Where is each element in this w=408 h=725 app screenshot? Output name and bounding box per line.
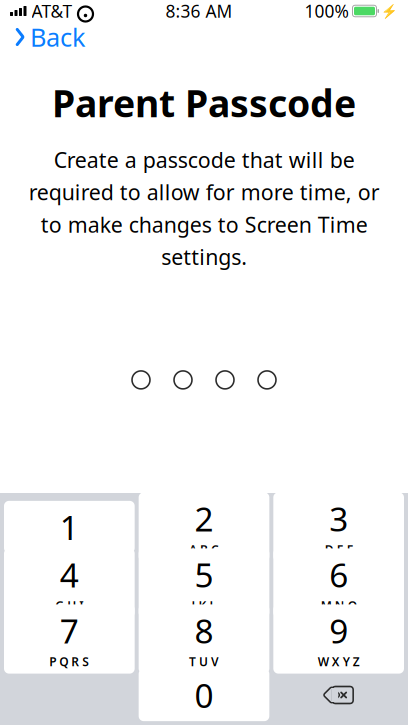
staticText: M N O [321,598,357,614]
staticText: P Q R S [49,654,89,670]
button[interactable]: 8 [139,613,269,665]
staticText: 1 [60,505,79,549]
staticText: W X Y Z [318,654,360,670]
staticText: 8:36 AM [165,0,232,22]
button[interactable]: Back [6,16,94,58]
button[interactable]: 4 [4,557,135,609]
staticText: 3 [329,496,348,541]
button[interactable]: 5 [139,557,269,609]
staticText: Parent Passcode [52,78,356,128]
button[interactable]: 1 [4,501,135,553]
staticText: 6 [329,552,348,597]
staticText: A B C [189,542,219,558]
staticText: 0 [194,673,213,717]
staticText: 7 [60,608,79,653]
button[interactable]: Delete [273,669,404,721]
button[interactable]: 0 [139,669,269,721]
staticText: 5 [194,552,213,597]
staticText: AT&T [31,0,72,22]
button[interactable]: 6 [273,557,404,609]
staticText: T U V [189,654,219,670]
staticText: J K L [191,598,216,614]
staticText: 4 [60,552,79,597]
button[interactable]: 3 [273,501,404,553]
staticText: ⚡ [381,3,398,19]
staticText: Create a passcode that will be required … [28,146,379,271]
staticText: G H I [55,598,83,614]
staticText: 2 [194,496,213,541]
button[interactable]: 2 [139,501,269,553]
staticText: D E F [325,542,353,558]
staticText: 9 [329,608,348,653]
button[interactable]: 7 [4,613,135,665]
staticText: 100% [304,0,348,22]
button[interactable]: 9 [273,613,404,665]
staticText: Back [30,20,86,54]
staticText: 8 [194,608,213,653]
